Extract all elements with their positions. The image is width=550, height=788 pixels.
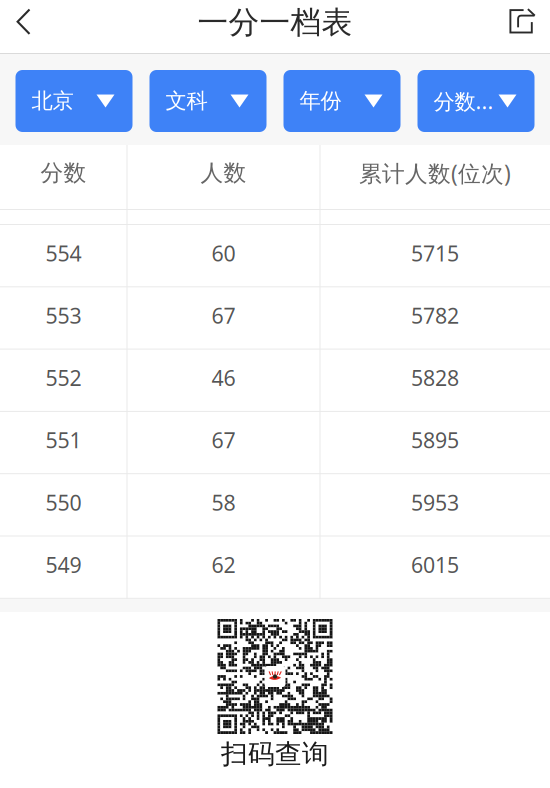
staticText: 扫码查询	[221, 738, 329, 770]
button[interactable]: 文科	[149, 70, 266, 132]
button[interactable]: 年份	[283, 70, 400, 132]
staticText: 550	[45, 488, 81, 516]
staticText: 分数...	[433, 87, 493, 115]
staticText: 北京	[31, 88, 73, 114]
staticText: 分数	[40, 159, 86, 187]
staticText: 549	[45, 550, 81, 579]
staticText: 5895	[411, 426, 459, 454]
staticText: 5782	[411, 301, 459, 330]
staticText: 62	[211, 550, 235, 579]
staticText: 553	[45, 301, 81, 330]
button[interactable]: 北京	[15, 70, 132, 132]
staticText: 554	[45, 239, 81, 267]
staticText: 5715	[411, 239, 459, 267]
staticText: 58	[211, 488, 235, 516]
staticText: 累计人数(位次)	[359, 158, 511, 188]
button[interactable]: 分数...	[417, 70, 534, 132]
staticText: 一分一档表	[197, 4, 352, 41]
staticText: 60	[211, 239, 235, 267]
staticText: 67	[211, 426, 235, 454]
staticText: 文科	[165, 88, 207, 114]
staticText: 年份	[299, 88, 341, 114]
staticText: 552	[45, 364, 81, 392]
staticText: 5828	[411, 364, 459, 392]
button[interactable]: Back	[0, 0, 46, 45]
button[interactable]: Share	[494, 0, 550, 46]
staticText: 67	[211, 301, 235, 330]
staticText: 6015	[411, 550, 459, 579]
staticText: 46	[211, 364, 235, 392]
staticText: 5953	[411, 488, 459, 516]
staticText: 551	[45, 426, 81, 454]
staticText: 人数	[200, 159, 246, 187]
